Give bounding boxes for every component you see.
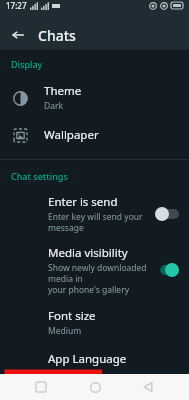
staticText: Dark bbox=[44, 100, 64, 112]
staticText: App Language bbox=[48, 351, 127, 367]
staticText: Show newly downloaded media in your phon… bbox=[48, 262, 149, 295]
button[interactable]: On bbox=[155, 263, 179, 277]
staticText: Theme bbox=[44, 83, 82, 99]
button[interactable]: Theme bbox=[0, 76, 189, 119]
staticText: Chats bbox=[38, 26, 76, 45]
button[interactable]: Back bbox=[6, 23, 30, 47]
staticText: Wallpaper bbox=[44, 127, 99, 143]
staticText: Chat settings bbox=[11, 170, 68, 182]
staticText: Enter is send bbox=[48, 194, 118, 210]
button[interactable]: Home bbox=[82, 374, 108, 400]
button[interactable]: Recent apps bbox=[28, 374, 54, 400]
button[interactable]: App Language bbox=[0, 344, 189, 374]
staticText: Media visibility bbox=[48, 245, 128, 261]
button[interactable]: Font size bbox=[0, 301, 189, 344]
staticText: Font size bbox=[48, 308, 96, 324]
button[interactable]: Enter is send bbox=[0, 188, 189, 239]
staticText: Display bbox=[11, 58, 43, 70]
staticText: Enter key will send your message bbox=[48, 211, 149, 233]
button[interactable]: Wallpaper bbox=[0, 119, 189, 151]
staticText: Medium bbox=[48, 325, 82, 337]
button[interactable]: Back bbox=[135, 374, 161, 400]
button[interactable]: Media visibility bbox=[0, 239, 189, 301]
button[interactable]: Off bbox=[155, 207, 179, 221]
staticText: 17:27 bbox=[6, 0, 27, 11]
